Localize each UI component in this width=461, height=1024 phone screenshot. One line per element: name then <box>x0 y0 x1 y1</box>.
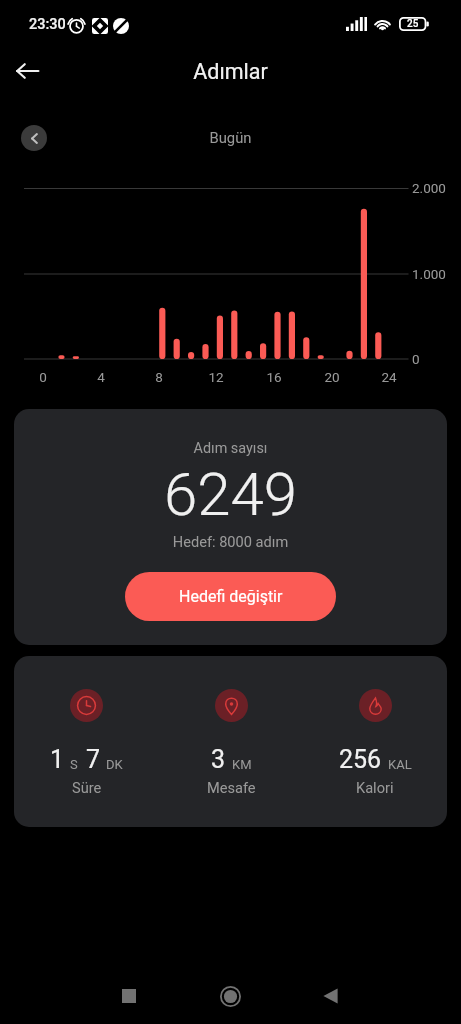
staticText: KAL <box>388 757 412 772</box>
staticText: Süre <box>72 779 102 796</box>
staticText: 1.000 <box>412 266 446 282</box>
staticText: S <box>70 757 78 772</box>
staticText: KM <box>232 757 252 772</box>
staticText: 24 <box>374 369 404 385</box>
button[interactable]: Hedefi değiştir <box>125 572 336 621</box>
button[interactable]: Previous day <box>21 125 47 151</box>
button[interactable]: Back <box>3 47 51 95</box>
staticText: Mesafe <box>207 779 256 796</box>
staticText: DK <box>106 757 123 772</box>
staticText: Kalori <box>356 779 394 796</box>
button[interactable]: Home <box>190 964 270 1024</box>
staticText: 12 <box>201 369 231 385</box>
staticText: 20 <box>317 369 347 385</box>
button[interactable]: Adım sayısı <box>14 409 447 645</box>
staticText: Hedefi değiştir <box>179 587 283 606</box>
staticText: 4 <box>86 369 116 385</box>
staticText: 25 <box>407 18 419 30</box>
staticText: Adımlar <box>0 59 461 84</box>
staticText: Bugün <box>0 129 461 146</box>
staticText: 7 <box>86 745 101 774</box>
staticText: 3 <box>211 745 226 774</box>
staticText: Hedef: 8000 adım <box>14 533 447 550</box>
staticText: 1 <box>50 745 65 774</box>
staticText: 2.000 <box>412 180 446 196</box>
staticText: 256 <box>339 745 382 774</box>
button[interactable]: Recent apps <box>89 964 169 1024</box>
staticText: 23:30 <box>29 16 66 33</box>
staticText: 6249 <box>14 459 447 529</box>
staticText: 16 <box>259 369 289 385</box>
staticText: 0 <box>412 351 420 367</box>
staticText: Adım sayısı <box>14 440 447 457</box>
staticText: 8 <box>144 369 174 385</box>
staticText: 0 <box>28 369 58 385</box>
button[interactable]: Back <box>290 964 370 1024</box>
